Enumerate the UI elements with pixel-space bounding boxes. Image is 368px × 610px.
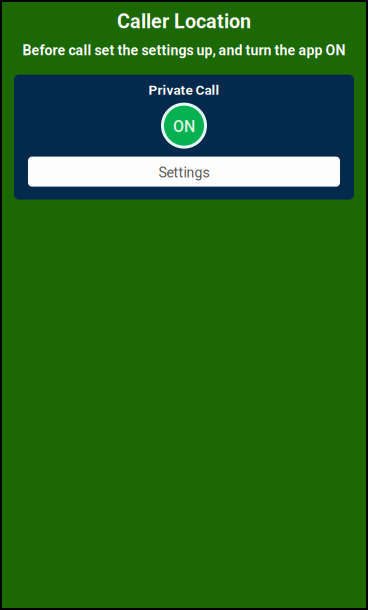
staticText: Before call set the settings up, and tur…	[22, 42, 345, 59]
staticText: Private Call	[148, 82, 219, 98]
button[interactable]: Turn private call ON	[161, 103, 207, 149]
staticText: Settings	[158, 164, 209, 181]
button[interactable]: Settings	[28, 157, 340, 187]
staticText: ON	[173, 117, 195, 136]
staticText: Caller Location	[117, 10, 251, 33]
